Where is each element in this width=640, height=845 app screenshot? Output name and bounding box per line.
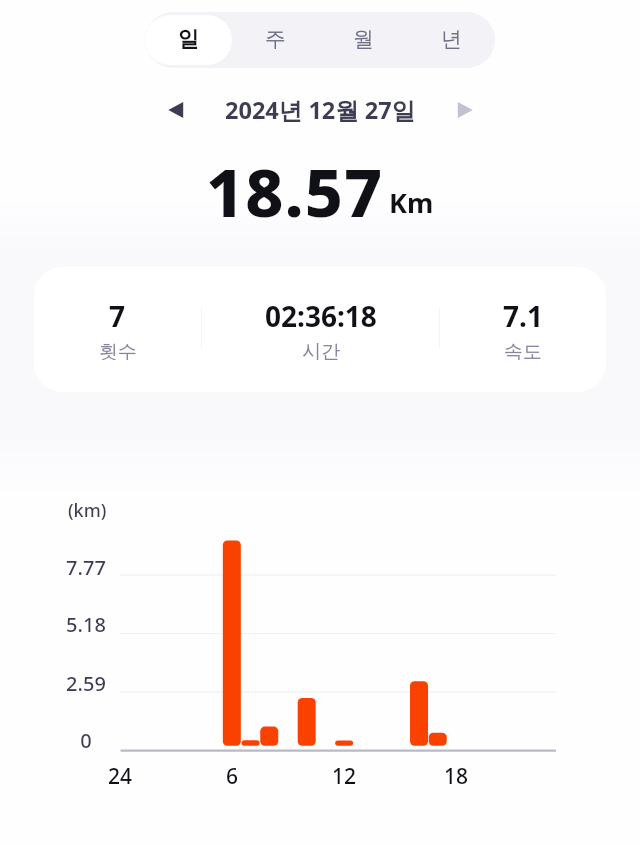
staticText: 02:36:18 — [265, 297, 377, 335]
staticText: 7.1 — [503, 297, 543, 335]
staticText: 18 — [416, 762, 496, 791]
button[interactable]: Previous day — [156, 92, 196, 128]
staticText: 0 — [6, 727, 166, 754]
staticText: 2.59 — [6, 670, 166, 697]
button[interactable]: 월 — [319, 15, 407, 65]
staticText: 주 — [265, 26, 286, 52]
staticText: 5.18 — [6, 611, 166, 638]
staticText: 년 — [441, 26, 462, 52]
staticText: 7 — [109, 297, 126, 335]
button[interactable]: 주 — [232, 15, 319, 65]
staticText: 속도 — [504, 340, 542, 364]
staticText: 12 — [304, 762, 384, 791]
staticText: 일 — [178, 26, 199, 52]
staticText: 시간 — [302, 340, 340, 364]
staticText: 횟수 — [99, 340, 137, 364]
staticText: 24 — [80, 762, 160, 791]
staticText: 2024년 12월 27일 — [225, 94, 416, 126]
button[interactable]: Next day — [445, 92, 485, 128]
button[interactable]: 일 — [145, 15, 232, 65]
staticText: (km) — [68, 498, 107, 523]
button[interactable]: 년 — [407, 15, 495, 65]
staticText: 6 — [192, 762, 272, 791]
staticText: 7.77 — [6, 554, 166, 581]
staticText: 월 — [353, 26, 374, 52]
staticText: 18.57 — [206, 146, 384, 236]
staticText: Km — [389, 184, 434, 221]
